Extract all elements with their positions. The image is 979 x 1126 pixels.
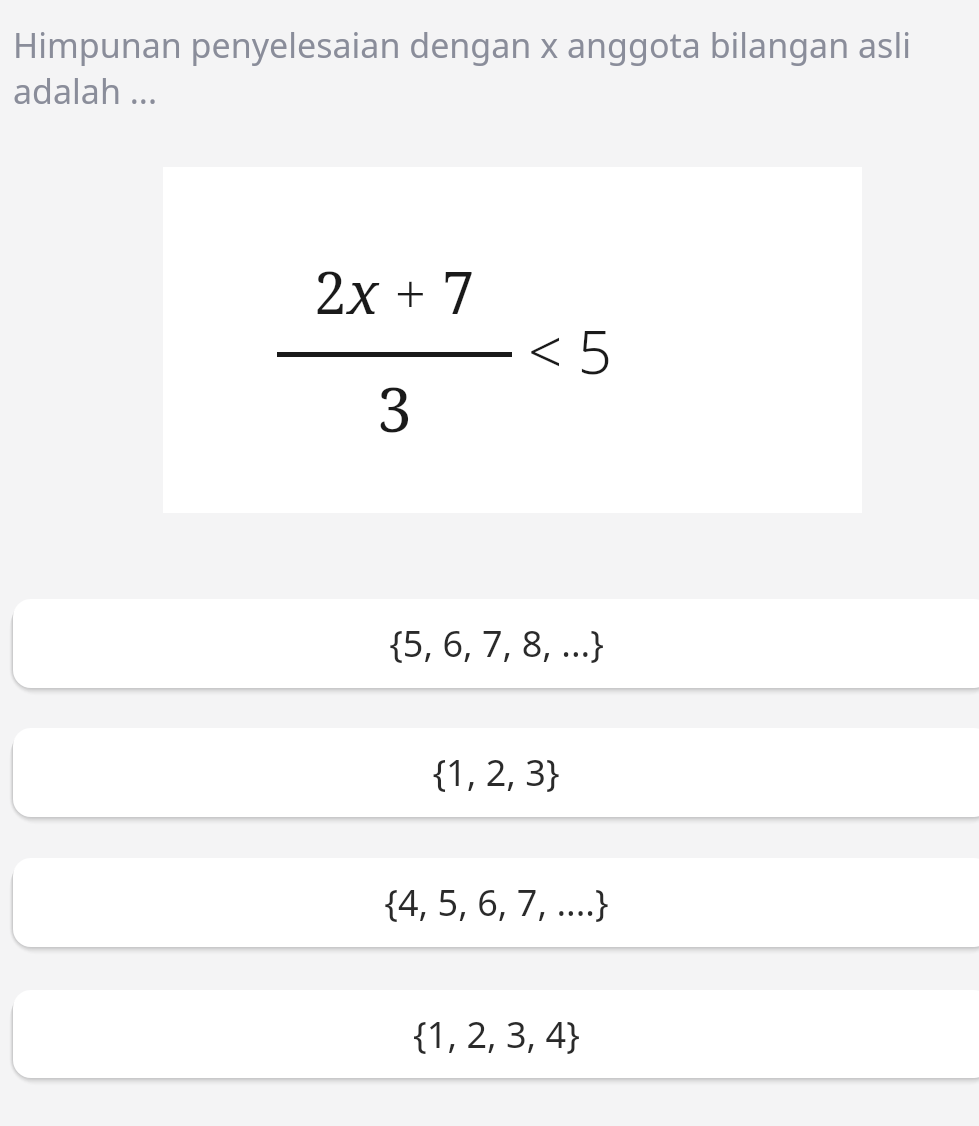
button[interactable]: {5, 6, 7, 8, ...} [13,599,979,688]
button[interactable]: {1, 2, 3, 4} [13,990,979,1078]
staticText: {1, 2, 3} [432,748,560,797]
staticText: + [395,255,426,329]
staticText: 2 [314,252,347,331]
staticText: {1, 2, 3, 4} [413,1010,580,1059]
staticText: Himpunan penyelesaian dengan x anggota b… [13,22,971,114]
staticText: {4, 5, 6, 7, ....} [384,878,609,927]
staticText: x [347,252,379,331]
button[interactable]: {1, 2, 3} [13,728,979,817]
staticText: {5, 6, 7, 8, ...} [389,619,604,668]
staticText: 7 [442,252,475,331]
staticText: < 5 [528,310,613,392]
button[interactable]: {4, 5, 6, 7, ....} [13,858,979,947]
staticText: 3 [377,366,412,450]
